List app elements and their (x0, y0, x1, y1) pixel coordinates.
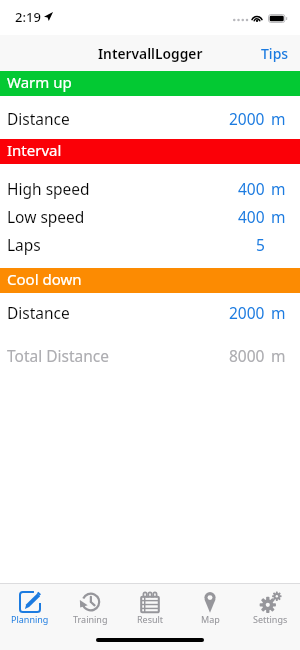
staticText: Tips (261, 44, 289, 63)
staticText: Total Distance (7, 345, 110, 366)
button[interactable]: Tips (250, 37, 300, 70)
staticText: m (271, 302, 283, 323)
staticText: Planning (11, 613, 49, 625)
staticText: 400 (238, 178, 265, 199)
staticText: m (271, 108, 283, 129)
staticText: 2000 (229, 108, 265, 129)
button[interactable]: Distance (0, 104, 300, 132)
staticText: 2:19 (15, 8, 41, 26)
staticText: Result (137, 613, 164, 625)
button[interactable]: Distance (0, 298, 300, 326)
staticText: Distance (7, 108, 70, 129)
button[interactable]: Laps (0, 230, 300, 258)
staticText: 400 (238, 206, 265, 227)
staticText: Settings (253, 613, 288, 625)
staticText: 5 (256, 234, 265, 255)
button[interactable]: Total Distance (0, 341, 300, 369)
button[interactable]: Settings (240, 589, 300, 625)
staticText: Interval (7, 140, 62, 160)
button[interactable]: Low speed (0, 202, 300, 230)
staticText: Low speed (7, 206, 85, 227)
button[interactable]: Result (120, 589, 180, 625)
staticText: IntervallLogger (98, 44, 203, 63)
button[interactable]: High speed (0, 174, 300, 202)
staticText: 2000 (229, 302, 265, 323)
staticText: m (271, 206, 283, 227)
staticText: Distance (7, 302, 70, 323)
staticText: Cool down (7, 269, 82, 289)
button[interactable]: Map (180, 589, 240, 625)
staticText: Warm up (7, 72, 72, 92)
staticText: m (271, 178, 283, 199)
staticText: High speed (7, 178, 90, 199)
staticText: m (271, 345, 283, 366)
staticText: 8000 (229, 345, 265, 366)
staticText: Map (201, 613, 220, 625)
staticText: Laps (7, 234, 41, 255)
button[interactable]: Planning (0, 589, 60, 625)
button[interactable]: Training (60, 589, 120, 625)
staticText: Training (73, 613, 108, 625)
